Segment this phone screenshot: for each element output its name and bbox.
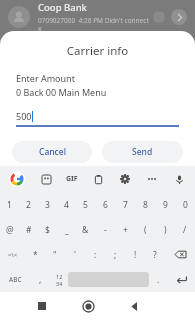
button[interactable]: 8 <box>135 192 155 217</box>
button[interactable]: Backspace <box>165 242 195 267</box>
staticText: Cancel <box>39 146 66 158</box>
staticText: Coop Bank <box>38 1 87 14</box>
staticText: ( <box>144 224 147 236</box>
staticText: $ <box>45 224 50 236</box>
staticText: 500 <box>16 110 32 122</box>
button[interactable]: * <box>25 242 45 267</box>
staticText: 0 Back 00 Main Menu <box>16 86 107 98</box>
button[interactable]: / <box>175 217 195 242</box>
staticText: ? <box>153 249 157 261</box>
staticText: " <box>53 249 57 261</box>
staticText: 1 <box>7 199 12 211</box>
button[interactable]: 7 <box>115 192 135 217</box>
staticText: ABC <box>9 275 22 284</box>
button[interactable]: ; <box>105 242 125 267</box>
button[interactable]: : <box>85 242 105 267</box>
staticText: 5 <box>83 199 88 211</box>
staticText: . <box>157 274 160 286</box>
staticText: ' <box>74 249 76 261</box>
staticText: ! <box>134 249 137 261</box>
staticText: Send <box>132 146 153 158</box>
button[interactable]: 5 <box>76 192 95 217</box>
button[interactable]: Send <box>102 141 183 163</box>
button[interactable]: GIF <box>66 174 78 184</box>
button[interactable]: =\< <box>0 242 25 267</box>
button[interactable]: 9 <box>155 192 175 217</box>
staticText: _ <box>65 224 69 236</box>
button[interactable]: 6 <box>95 192 115 217</box>
button[interactable]: . <box>149 267 167 292</box>
button[interactable]: ( <box>135 217 155 242</box>
staticText: 0709027000 4:26 PM Didn't connect K <box>38 16 153 34</box>
button[interactable]: Voice input <box>172 172 186 186</box>
button[interactable]: Cancel <box>12 141 92 163</box>
staticText: 2 <box>26 199 31 211</box>
button[interactable]: More <box>145 172 159 186</box>
staticText: 0 <box>183 199 188 211</box>
button[interactable]: - <box>95 217 115 242</box>
button[interactable]: 12 <box>50 267 68 292</box>
button[interactable]: Home <box>75 293 101 319</box>
staticText: 12 <box>56 273 63 280</box>
button[interactable]: 500 <box>16 110 179 127</box>
staticText: GIF <box>66 174 78 184</box>
button[interactable]: Recents <box>29 293 55 319</box>
button[interactable]: 2 <box>19 192 38 217</box>
button[interactable]: ABC <box>0 267 31 292</box>
staticText: : <box>94 249 97 261</box>
button[interactable]: $ <box>38 217 57 242</box>
staticText: # <box>26 224 32 236</box>
button[interactable]: 4 <box>57 192 76 217</box>
staticText: 7 <box>123 199 128 211</box>
staticText: 3 <box>45 199 50 211</box>
button[interactable]: , <box>31 267 50 292</box>
button[interactable]: ? <box>145 242 165 267</box>
staticText: - <box>104 224 107 236</box>
staticText: ; <box>114 249 117 261</box>
staticText: =\< <box>8 251 18 259</box>
staticText: 6 <box>103 199 108 211</box>
button[interactable]: 3 <box>38 192 57 217</box>
button[interactable]: + <box>115 217 135 242</box>
button[interactable]: Clipboard <box>91 172 105 186</box>
staticText: 4 <box>64 199 69 211</box>
staticText: / <box>183 224 187 236</box>
staticText: 9 <box>163 199 168 211</box>
button[interactable]: Google <box>9 171 25 187</box>
button[interactable]: 1 <box>0 192 19 217</box>
button[interactable]: Sticker <box>39 172 53 186</box>
button[interactable]: ! <box>125 242 145 267</box>
staticText: Carrier info <box>0 43 195 59</box>
staticText: * <box>33 249 38 261</box>
staticText: Enter Amount <box>16 72 75 84</box>
other: Open <box>171 9 187 25</box>
staticText: & <box>82 224 89 236</box>
staticText: ) <box>164 224 167 236</box>
button[interactable]: ) <box>155 217 175 242</box>
staticText: , <box>39 274 42 286</box>
staticText: 34 <box>56 280 63 287</box>
staticText: + <box>123 224 128 236</box>
button[interactable]: 0 <box>175 192 195 217</box>
button[interactable]: " <box>45 242 65 267</box>
button[interactable]: ' <box>65 242 85 267</box>
button[interactable]: Back <box>121 293 147 319</box>
button[interactable]: # <box>19 217 38 242</box>
button[interactable]: _ <box>57 217 76 242</box>
button[interactable]: @ <box>0 217 19 242</box>
staticText: 8 <box>143 199 148 211</box>
button[interactable]: Settings <box>118 172 132 186</box>
button[interactable]: Enter <box>167 267 195 292</box>
button[interactable]: & <box>76 217 95 242</box>
staticText: @ <box>6 224 14 236</box>
